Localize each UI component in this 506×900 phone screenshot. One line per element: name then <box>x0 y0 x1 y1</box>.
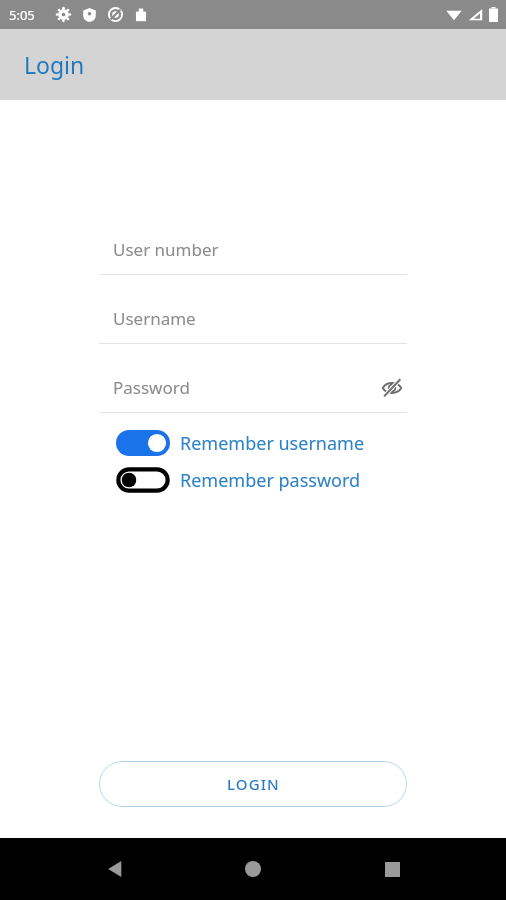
staticText: Remember username <box>180 431 365 456</box>
button[interactable]: Remember username <box>110 430 482 456</box>
staticText: LOGIN <box>227 774 280 794</box>
staticText: Password <box>113 376 190 399</box>
staticText: 5:05 <box>9 6 35 24</box>
staticText: Remember password <box>180 468 361 493</box>
button[interactable]: Remember password <box>110 467 482 493</box>
button[interactable]: Recents <box>368 845 416 893</box>
button[interactable]: Home <box>229 845 277 893</box>
button[interactable]: Back <box>91 845 139 893</box>
button[interactable]: LOGIN <box>99 761 407 807</box>
button[interactable]: Toggle password visibility <box>377 373 407 403</box>
button[interactable]: Password <box>99 369 407 406</box>
staticText: Username <box>113 307 196 330</box>
staticText: Login <box>24 49 85 80</box>
staticText: User number <box>113 238 219 261</box>
button[interactable]: Username <box>99 300 407 337</box>
button[interactable]: User number <box>99 231 407 268</box>
